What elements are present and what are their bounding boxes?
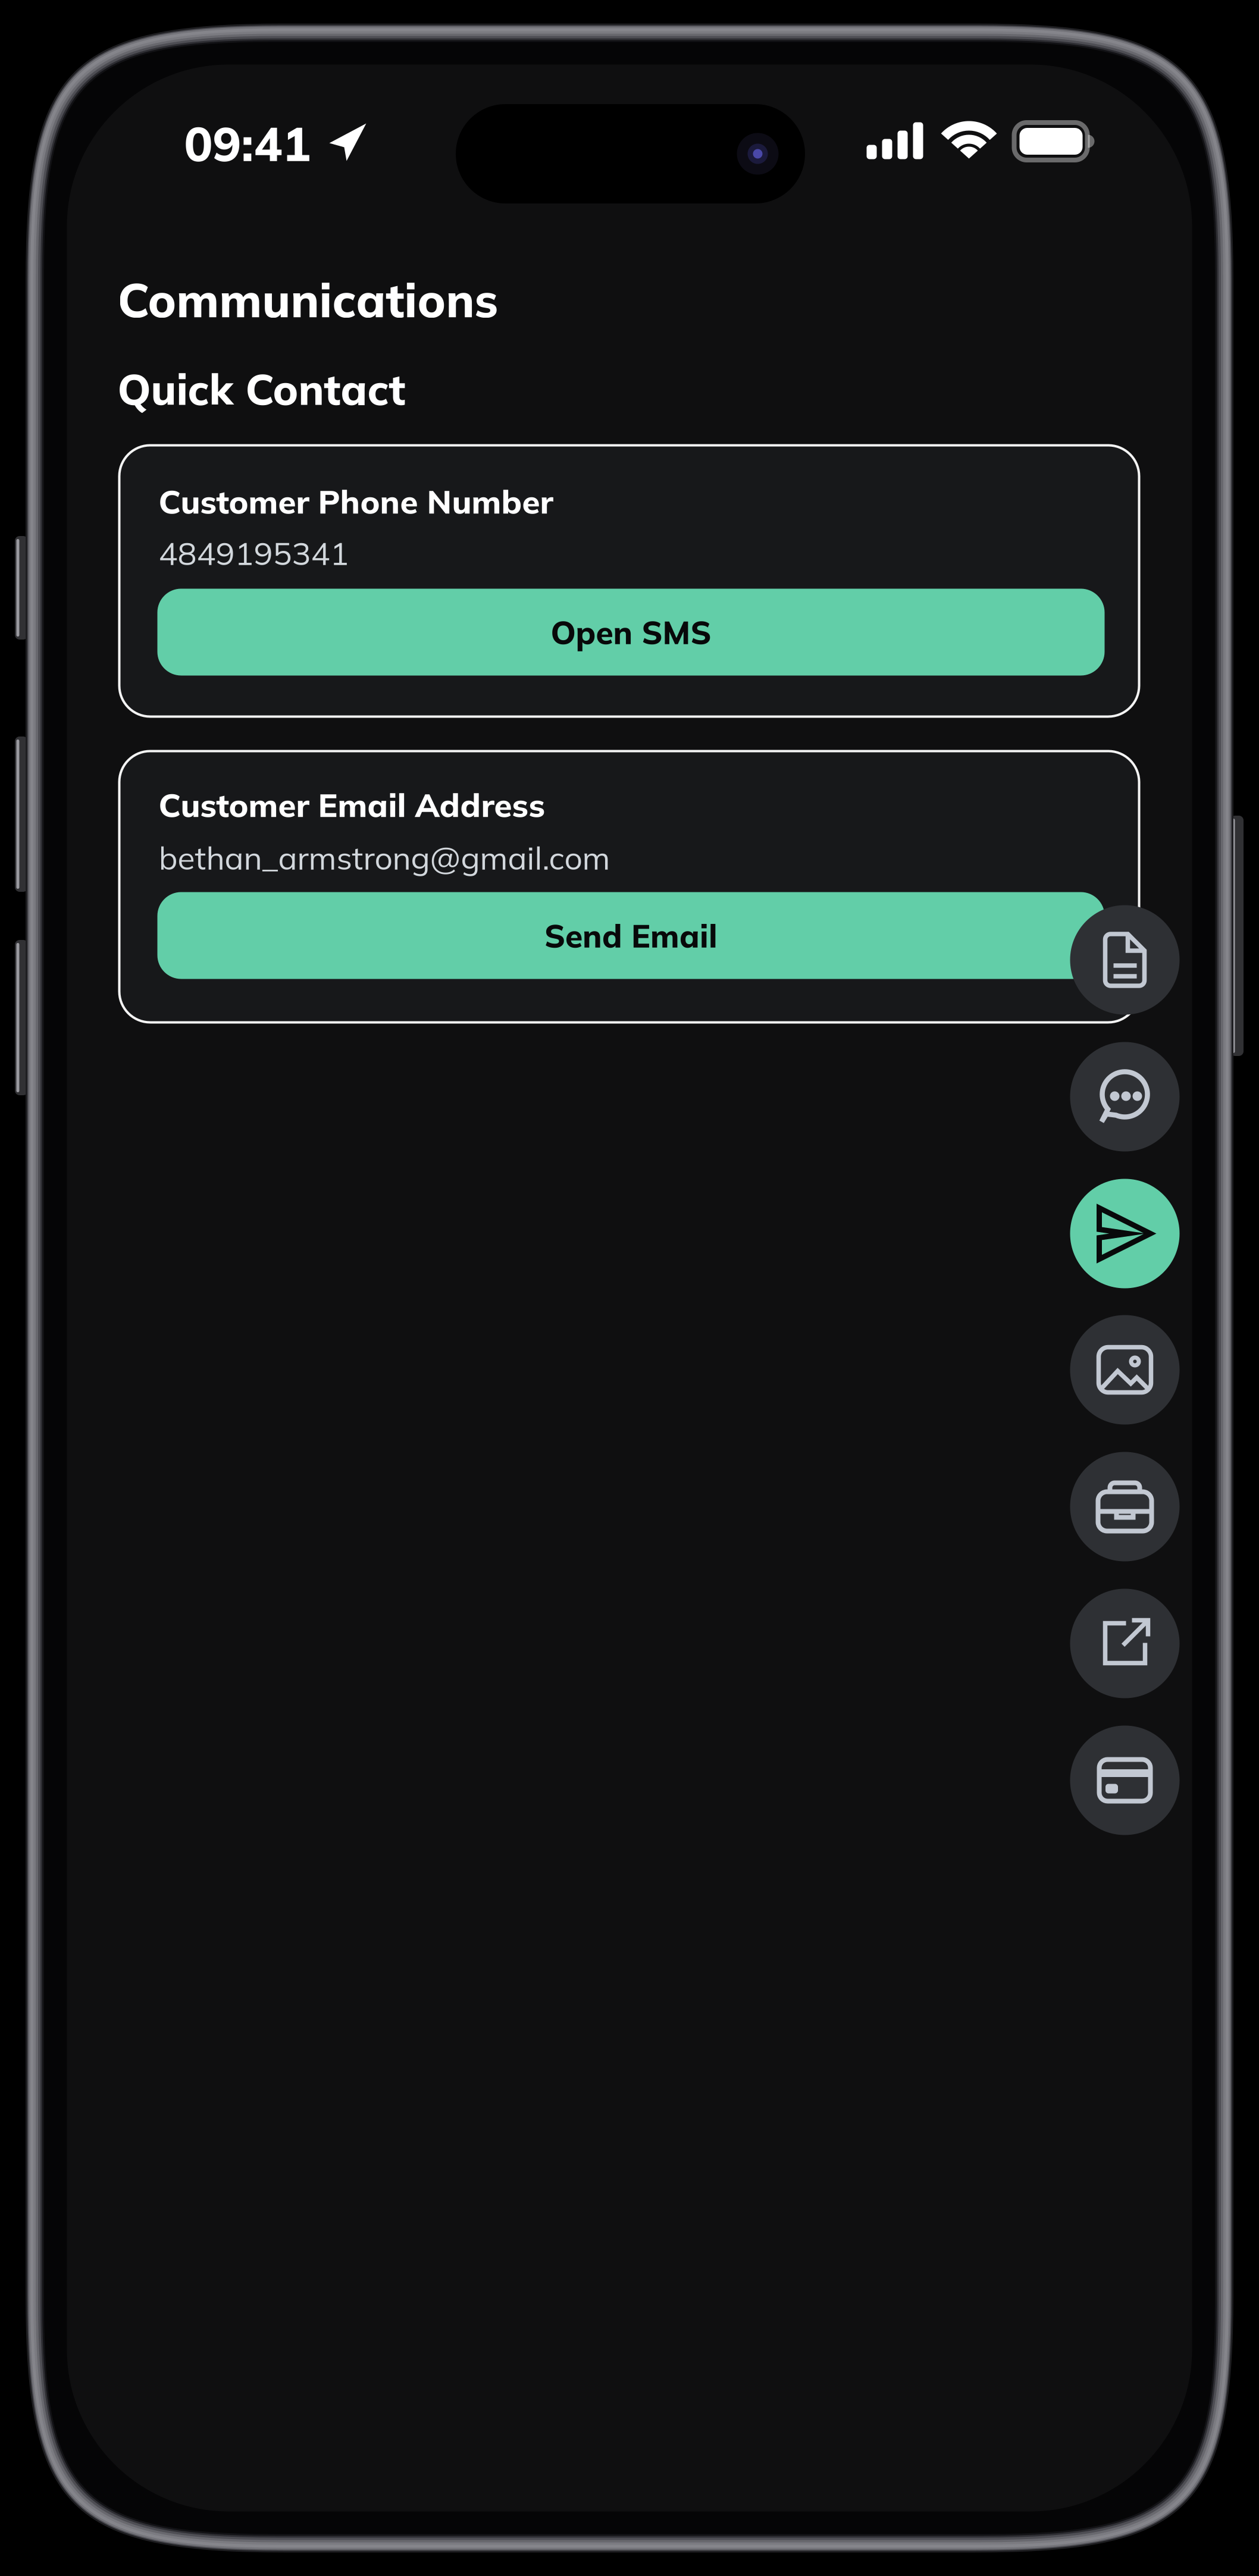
staticText: Send Email bbox=[544, 916, 718, 955]
staticText: Customer Phone Number bbox=[159, 481, 553, 522]
button[interactable]: Payments bbox=[1070, 1726, 1180, 1835]
button[interactable]: Messages bbox=[1070, 1042, 1180, 1151]
staticText: Customer Email Address bbox=[159, 784, 545, 825]
staticText: bethan_armstrong@gmail.com bbox=[159, 838, 610, 877]
staticText: Communications bbox=[118, 270, 498, 329]
button[interactable]: Send bbox=[1070, 1179, 1180, 1288]
staticText: Open SMS bbox=[551, 612, 711, 652]
button[interactable]: Photos bbox=[1070, 1315, 1180, 1425]
staticText: 09:41 bbox=[184, 113, 311, 173]
staticText: 4849195341 bbox=[159, 533, 349, 573]
button[interactable]: Send Email bbox=[157, 892, 1105, 979]
staticText: Quick Contact bbox=[118, 362, 405, 415]
button[interactable]: Jobs bbox=[1070, 1452, 1180, 1561]
button[interactable]: Open SMS bbox=[157, 589, 1105, 676]
button[interactable]: Documents bbox=[1070, 905, 1180, 1015]
button[interactable]: Open link bbox=[1070, 1589, 1180, 1698]
